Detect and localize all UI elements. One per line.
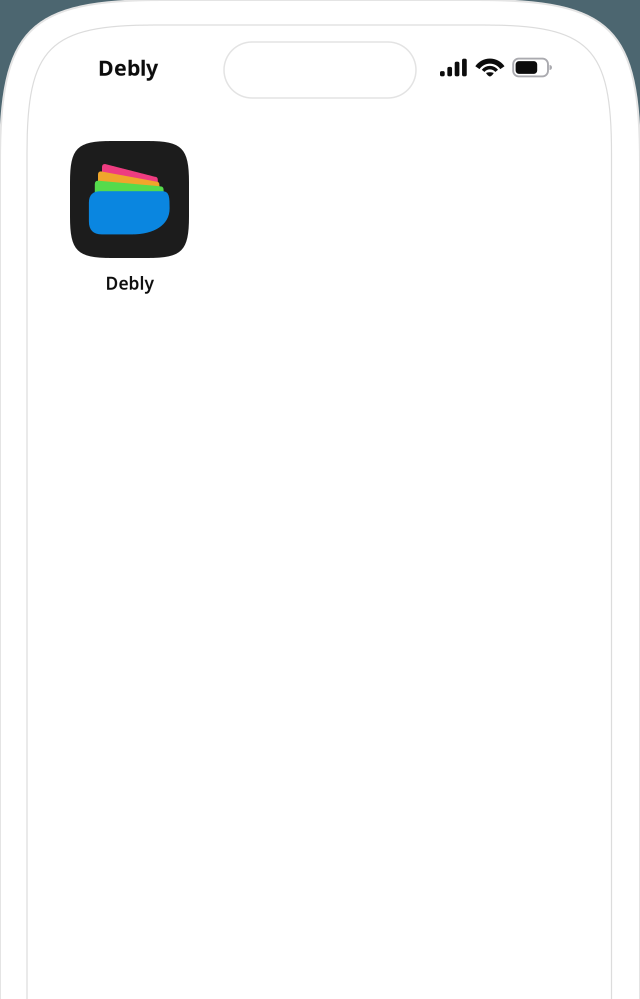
staticText: Debly: [98, 53, 158, 82]
button[interactable]: Debly: [70, 141, 189, 294]
staticText: Debly: [105, 271, 153, 294]
